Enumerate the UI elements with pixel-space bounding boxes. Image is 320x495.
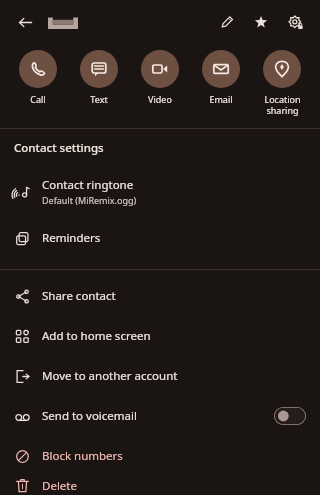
button[interactable]: Send to voicemail toggle [274, 407, 306, 425]
button[interactable]: Email [192, 50, 250, 105]
staticText: Move to another account [42, 368, 178, 384]
staticText: Block numbers [42, 448, 123, 464]
button[interactable]: Reminders [0, 215, 320, 261]
staticText: Add to home screen [42, 328, 151, 344]
button[interactable]: Back [12, 9, 38, 35]
staticText: Send to voicemail [42, 408, 137, 424]
staticText: Delete [42, 478, 77, 494]
button[interactable]: Text [70, 50, 128, 105]
button[interactable]: Send to voicemail [0, 396, 320, 436]
button[interactable]: Settings [282, 9, 308, 35]
button[interactable]: Share contact [0, 276, 320, 316]
button[interactable]: Favorite [248, 9, 274, 35]
staticText: Video [148, 93, 172, 105]
button[interactable]: Call [9, 50, 67, 105]
button[interactable]: Video [131, 50, 189, 105]
button[interactable]: Location sharing [253, 50, 311, 116]
staticText: Reminders [42, 230, 101, 246]
button[interactable]: Edit [214, 9, 240, 35]
button[interactable]: Contact ringtone [0, 167, 320, 215]
staticText: Contact ringtone [42, 177, 134, 193]
button[interactable]: Add to home screen [0, 316, 320, 356]
button[interactable]: Block numbers [0, 436, 320, 476]
staticText: Share contact [42, 288, 116, 304]
staticText: Default (MiRemix.ogg) [42, 194, 137, 206]
button[interactable]: Delete [0, 476, 320, 495]
staticText: Email [209, 93, 233, 105]
button[interactable]: Move to another account [0, 356, 320, 396]
staticText: Call [30, 93, 46, 105]
staticText: Contact settings [14, 140, 104, 156]
staticText: Text [90, 93, 108, 105]
staticText: Location sharing [264, 93, 301, 116]
